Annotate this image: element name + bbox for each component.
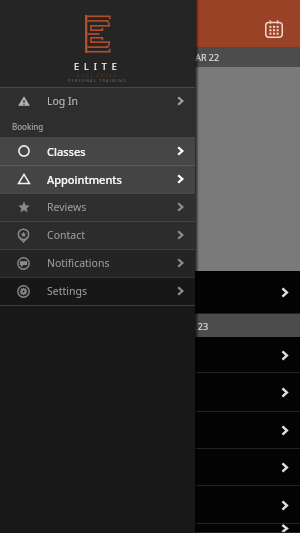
- staticText: Appointments: [47, 172, 122, 187]
- staticText: Notifications: [47, 256, 110, 270]
- other: Open item: [280, 462, 291, 473]
- other: Open item: [280, 387, 291, 398]
- button[interactable]: Notifications: [0, 249, 195, 277]
- staticText: MAR 22: [187, 51, 220, 63]
- staticText: EXCLUSIVE: [77, 73, 119, 78]
- button[interactable]: Open item: [0, 373, 300, 412]
- button[interactable]: Open item: [0, 449, 300, 486]
- staticText: PERSONAL TRAINING: [68, 78, 127, 83]
- button[interactable]: Open item: [0, 412, 300, 449]
- button[interactable]: Classes: [0, 137, 195, 165]
- button[interactable]: Open item: [0, 337, 300, 373]
- other: Open item: [280, 425, 291, 436]
- staticText: Booking: [12, 121, 44, 132]
- staticText: ELITE: [74, 60, 122, 72]
- button[interactable]: Reviews: [0, 193, 195, 221]
- staticText: Contact: [47, 228, 85, 242]
- button[interactable]: Open item: [0, 271, 300, 314]
- button[interactable]: Open item: [0, 486, 300, 524]
- other: Open item: [280, 500, 291, 511]
- button[interactable]: Log In: [0, 87, 195, 115]
- button[interactable]: Contact: [0, 221, 195, 249]
- button[interactable]: Open item: [0, 524, 300, 533]
- button[interactable]: Calendar: [259, 20, 289, 47]
- other: Open item: [280, 524, 291, 533]
- button[interactable]: Settings: [0, 277, 195, 305]
- staticText: Classes: [47, 144, 86, 159]
- button[interactable]: Appointments: [0, 165, 195, 193]
- other: Open item: [280, 287, 291, 298]
- other: Open item: [280, 350, 291, 361]
- staticText: Reviews: [47, 200, 87, 214]
- staticText: Log In: [47, 94, 79, 108]
- staticText: Settings: [47, 284, 87, 298]
- staticText: MAR 23: [176, 320, 209, 332]
